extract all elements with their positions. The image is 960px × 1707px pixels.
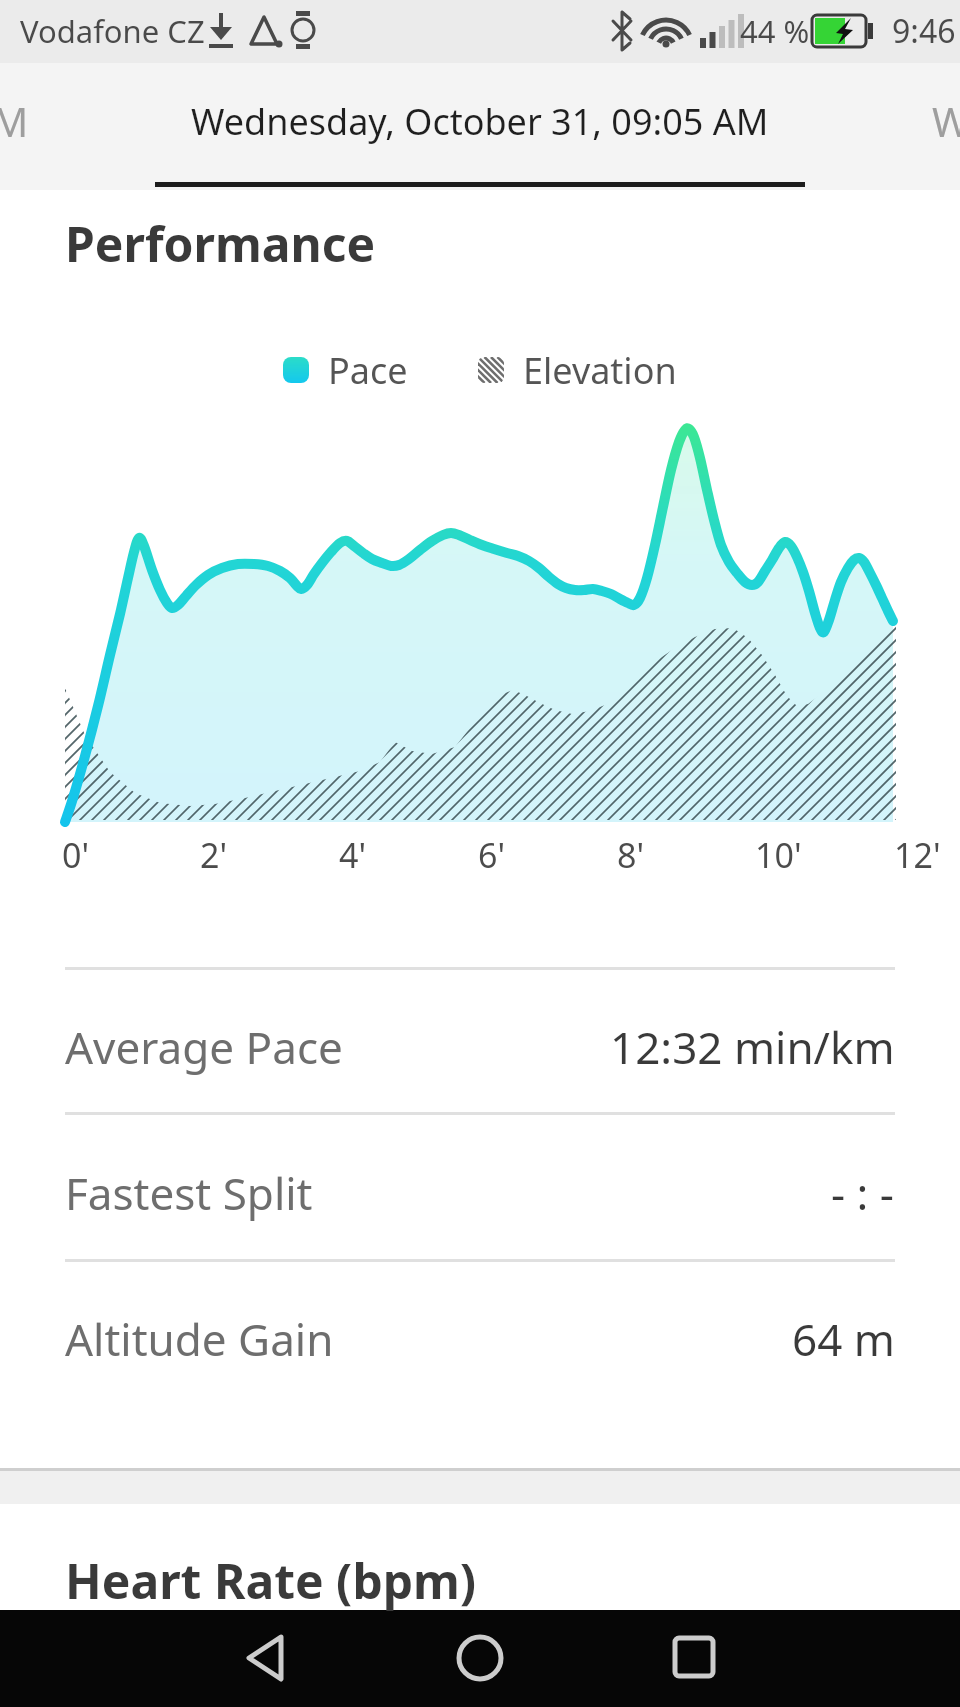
staticText: W	[932, 94, 960, 148]
button[interactable]	[619, 1612, 769, 1707]
button[interactable]	[478, 357, 504, 383]
staticText: Altitude Gain	[65, 1309, 334, 1369]
button[interactable]: Wednesday, October 31, 09:05 AM	[110, 81, 850, 161]
staticText: Performance	[65, 211, 376, 276]
staticText: 2'	[200, 832, 228, 878]
staticText: M	[0, 94, 29, 148]
staticText: 10'	[755, 832, 802, 878]
staticText: 4'	[339, 832, 367, 878]
staticText: Vodafone CZ	[20, 10, 205, 52]
button[interactable]	[283, 357, 309, 383]
button[interactable]	[205, 1612, 355, 1707]
button[interactable]	[405, 1612, 555, 1707]
staticText: - : -	[831, 1163, 895, 1223]
staticText: 64 m	[792, 1309, 895, 1369]
staticText: 9:46	[892, 9, 956, 53]
staticText: Wednesday, October 31, 09:05 AM	[191, 97, 769, 146]
staticText: Elevation	[523, 346, 677, 395]
staticText: 12:32 min/km	[610, 1017, 895, 1077]
staticText: 6'	[478, 832, 506, 878]
staticText: 44 %	[740, 10, 810, 52]
staticText: Heart Rate (bpm)	[65, 1548, 477, 1613]
staticText: Pace	[328, 346, 408, 395]
staticText: 0'	[62, 832, 90, 878]
staticText: Fastest Split	[65, 1163, 313, 1223]
staticText: 12'	[894, 832, 941, 878]
staticText: 8'	[617, 832, 645, 878]
staticText: Average Pace	[65, 1017, 343, 1077]
